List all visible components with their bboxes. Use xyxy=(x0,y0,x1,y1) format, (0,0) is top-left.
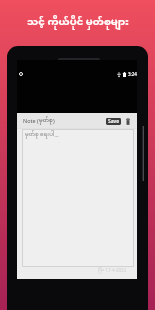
staticText: မှတ်စု xyxy=(39,117,53,124)
button[interactable]: Save xyxy=(106,118,121,125)
staticText: 3:24 xyxy=(128,71,137,77)
staticText: မှတ်စု ရေးပါ... xyxy=(25,131,59,138)
staticText: သင့် ကိုယ်ပိုင် မှတ်စုများ xyxy=(27,16,129,30)
staticText: Save xyxy=(108,118,120,125)
staticText: Note ( xyxy=(23,117,39,124)
staticText: ပြီ။ 17-4-2022 xyxy=(98,267,127,273)
button[interactable]: Delete note xyxy=(124,116,132,126)
button[interactable]: မှတ်စု ရေးပါ... xyxy=(22,129,134,267)
staticText: ) xyxy=(53,117,55,124)
